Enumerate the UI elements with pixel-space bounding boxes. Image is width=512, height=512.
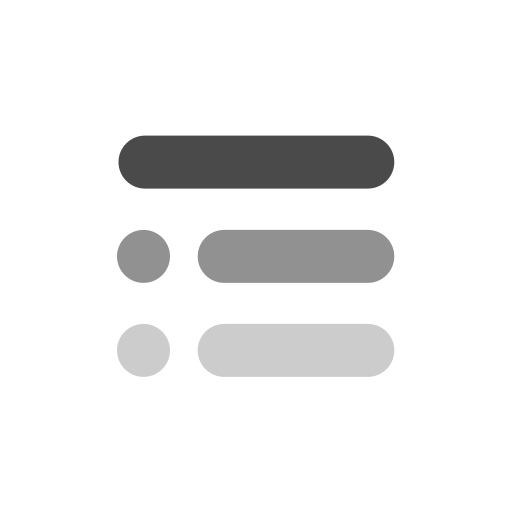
button[interactable]: Title placeholder: [118, 136, 394, 189]
button[interactable]: List item one placeholder: [0, 230, 394, 283]
button[interactable]: List item two placeholder: [0, 324, 394, 377]
